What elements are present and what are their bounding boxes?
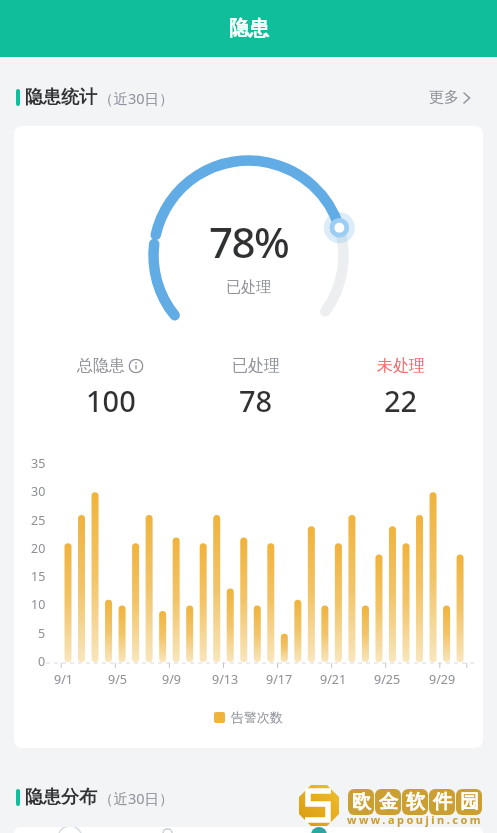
- staticText: 9/1: [54, 671, 73, 688]
- staticText: 件: [433, 790, 452, 814]
- button[interactable]: 更多: [429, 88, 471, 107]
- staticText: 已处理: [226, 278, 271, 297]
- staticText: 9/29: [429, 671, 456, 688]
- staticText: 隐患: [229, 16, 269, 41]
- staticText: 9/21: [320, 671, 347, 688]
- staticText: 20: [31, 540, 46, 557]
- staticText: 35: [31, 455, 46, 472]
- staticText: 78%: [209, 213, 289, 270]
- staticText: 25: [31, 512, 46, 529]
- staticText: （近30日）: [99, 788, 174, 808]
- staticText: 9/25: [374, 671, 401, 688]
- staticText: 总隐患: [77, 356, 125, 376]
- staticText: 欧: [352, 790, 371, 814]
- staticText: 30: [31, 483, 46, 500]
- staticText: 0: [38, 653, 46, 670]
- staticText: www.apoujin.com: [347, 812, 484, 827]
- staticText: 5: [38, 625, 46, 642]
- staticText: 隐患分布: [25, 786, 97, 809]
- staticText: 未处理: [377, 356, 425, 376]
- staticText: 隐患统计: [25, 86, 97, 109]
- staticText: 园: [460, 790, 479, 814]
- staticText: 9/13: [212, 671, 239, 688]
- staticText: 更多: [429, 88, 459, 107]
- staticText: 9/5: [108, 671, 127, 688]
- staticText: （近30日）: [99, 88, 174, 108]
- staticText: 9/9: [162, 671, 181, 688]
- staticText: 金: [379, 790, 398, 814]
- staticText: 15: [31, 568, 46, 585]
- staticText: 告警次数: [231, 709, 283, 725]
- staticText: 10: [31, 596, 46, 613]
- staticText: 已处理: [232, 356, 280, 376]
- staticText: 软: [406, 790, 425, 814]
- button[interactable]: 告警次数: [214, 709, 283, 725]
- staticText: 22: [384, 381, 418, 420]
- staticText: 9/17: [266, 671, 293, 688]
- staticText: 78: [239, 381, 273, 420]
- staticText: 100: [86, 381, 136, 420]
